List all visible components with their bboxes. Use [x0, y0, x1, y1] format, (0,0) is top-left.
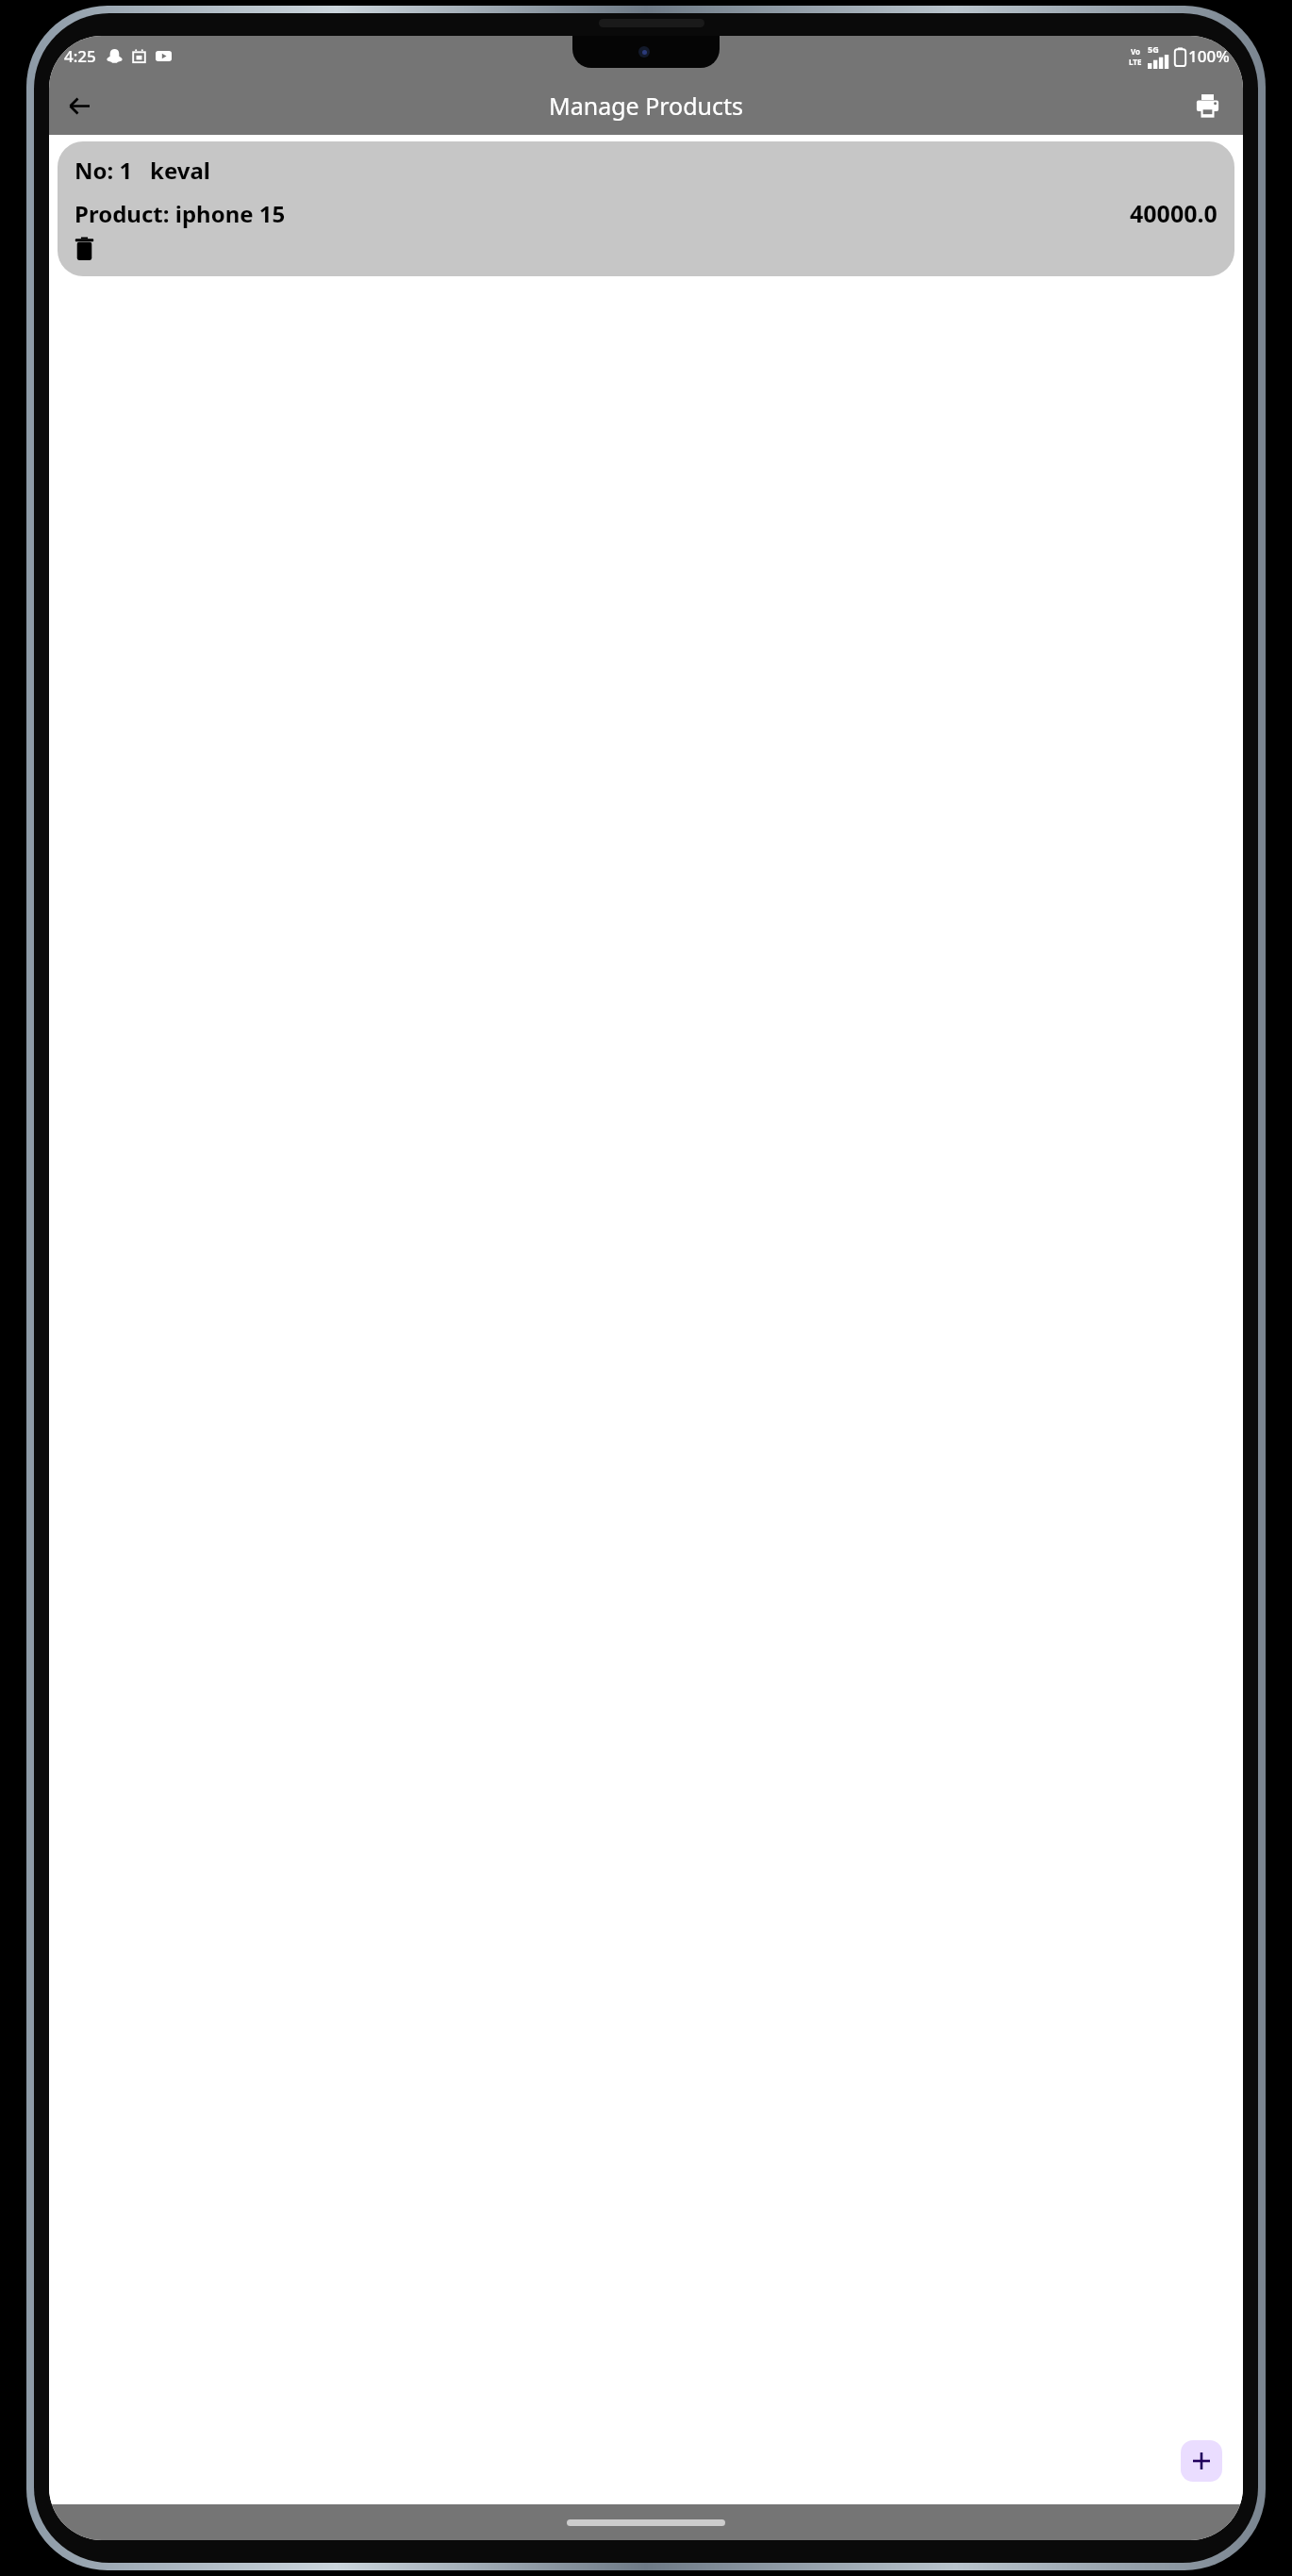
button[interactable]: Back — [55, 81, 104, 130]
staticText: 4:25 — [64, 45, 96, 67]
staticText: Product: iphone 15 — [75, 198, 286, 229]
button[interactable]: Print — [1183, 81, 1232, 130]
staticText: No: 1 — [75, 155, 133, 186]
button[interactable]: No: 1 — [58, 141, 1234, 276]
staticText: Vo — [1131, 46, 1141, 57]
button[interactable]: Add product — [1181, 2440, 1222, 2482]
staticText: 5G — [1148, 43, 1159, 55]
staticText: 100% — [1188, 45, 1230, 67]
staticText: Manage Products — [549, 90, 744, 122]
staticText: 40000.0 — [1130, 197, 1217, 229]
staticText: keval — [150, 155, 210, 186]
staticText: LTE — [1129, 57, 1142, 67]
button[interactable]: Delete — [75, 233, 107, 265]
